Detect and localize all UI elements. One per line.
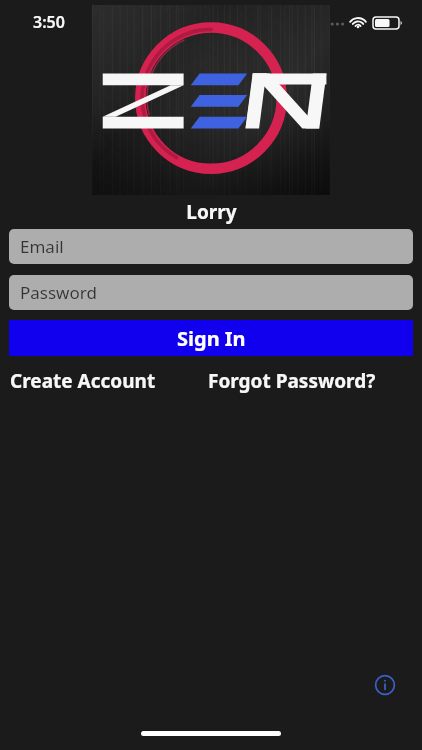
staticText: Create Account xyxy=(10,368,156,394)
staticText: 3:50 xyxy=(33,11,65,33)
button[interactable]: Forgot Password? xyxy=(204,366,372,392)
staticText: Sign In xyxy=(177,325,246,352)
button[interactable]: Create Account xyxy=(6,366,152,392)
staticText: Lorry xyxy=(186,199,237,225)
staticText: Forgot Password? xyxy=(208,368,376,394)
button[interactable]: Information xyxy=(367,667,403,703)
staticText: Email xyxy=(20,235,64,258)
button[interactable]: Password xyxy=(9,275,413,310)
staticText: Password xyxy=(20,281,97,304)
button[interactable]: Sign In xyxy=(9,320,413,356)
button[interactable]: Email xyxy=(9,229,413,264)
